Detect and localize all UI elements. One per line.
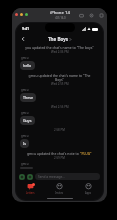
staticText: Is xyxy=(23,141,26,146)
button[interactable]: Invites xyxy=(45,182,74,196)
staticText: Wed 2:06 PM xyxy=(51,50,69,54)
staticText: Invites xyxy=(55,191,64,195)
staticText: hello xyxy=(23,63,32,68)
staticText: gmcu xyxy=(21,88,29,92)
staticText: gmcu updated the chat's name to "The Boy… xyxy=(25,73,94,82)
button[interactable]: Apps xyxy=(74,182,103,196)
button[interactable]: Letters xyxy=(16,182,45,196)
staticText: gmcu xyxy=(21,56,29,60)
staticText: Apps xyxy=(85,191,92,195)
staticText: gmcu updated the chat's note to xyxy=(27,151,80,156)
button[interactable]: Camera xyxy=(19,174,25,180)
button[interactable]: The Boys xyxy=(48,36,72,42)
staticText: you updated the chat's name to "The boys… xyxy=(25,45,94,50)
staticText: 9:41 xyxy=(22,26,30,31)
button[interactable]: Send a message... xyxy=(35,173,100,180)
button[interactable]: Gallery xyxy=(27,174,33,180)
staticText: iPhone 14 xyxy=(50,10,70,16)
staticText: iOS 16.0 xyxy=(55,16,66,20)
staticText: 2:59 PM xyxy=(54,156,65,160)
staticText: gmcu xyxy=(21,111,29,115)
button[interactable]: Is xyxy=(20,139,29,148)
staticText: 2:58 PM xyxy=(54,128,65,132)
staticText: These xyxy=(23,95,33,100)
button[interactable]: Settings xyxy=(88,12,94,18)
button[interactable]: hello xyxy=(20,61,35,70)
staticText: The Boys xyxy=(48,36,68,42)
button[interactable]: Record xyxy=(98,12,104,18)
staticText: Guys xyxy=(23,118,32,123)
button[interactable]: These xyxy=(20,93,36,102)
staticText: Letters xyxy=(26,191,35,195)
staticText: gmcu xyxy=(21,134,29,138)
button[interactable]: Back xyxy=(19,35,26,42)
staticText: Wed 2:56 PM xyxy=(51,105,69,109)
staticText: gmcu xyxy=(21,162,29,166)
staticText: Wed 2:55 PM xyxy=(51,82,69,86)
button[interactable]: Home xyxy=(78,12,84,18)
staticText: "PLUG" xyxy=(80,151,92,156)
staticText: Send a message... xyxy=(38,175,65,179)
button[interactable]: Guys xyxy=(20,116,35,125)
